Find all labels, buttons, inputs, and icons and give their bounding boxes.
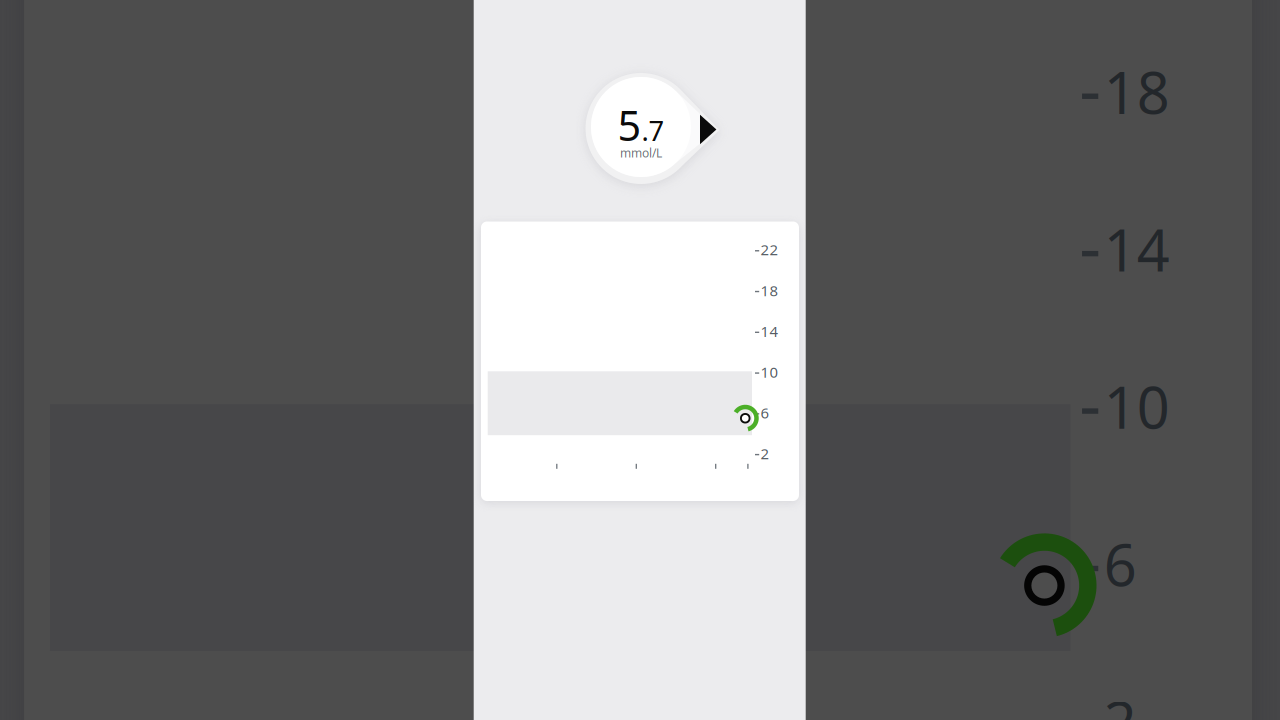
staticText: 10 [1104, 367, 1170, 446]
button[interactable]: Current glucose 5.7 mmol per litre, stea… [586, 71, 720, 188]
staticText: 10 [761, 362, 779, 382]
button[interactable]: Glucose history chart [481, 221, 799, 501]
staticText: 6 [761, 402, 770, 423]
staticText: 18 [1104, 52, 1170, 131]
staticText: 18 [761, 280, 779, 300]
staticText: 6 [1104, 525, 1137, 603]
staticText: 14 [761, 321, 779, 341]
staticText: .7 [641, 112, 664, 149]
staticText: mmol/L [620, 145, 662, 161]
staticText: 2 [761, 443, 770, 463]
staticText: 22 [761, 239, 779, 260]
staticText: 5 [617, 97, 641, 153]
staticText: 14 [1104, 210, 1170, 288]
staticText: 2 [1104, 682, 1137, 720]
